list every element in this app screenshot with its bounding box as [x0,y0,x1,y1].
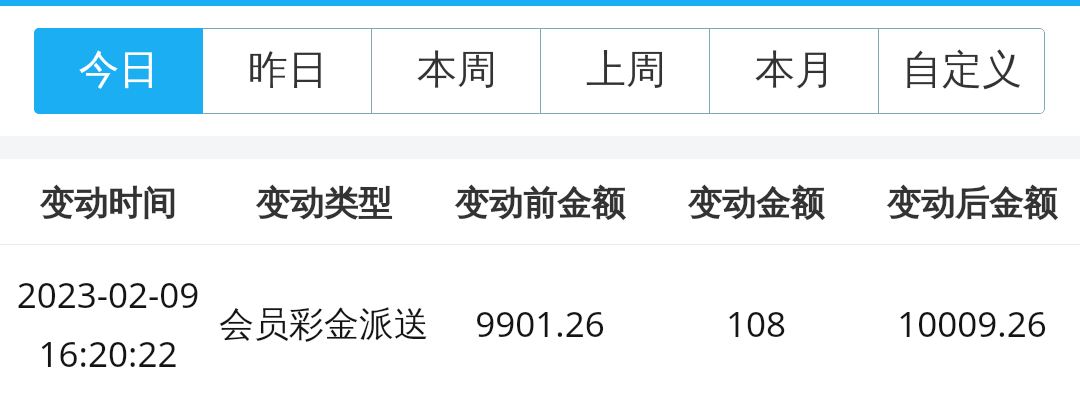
staticText: 2023-02-09 16:20:22 [0,271,216,378]
staticText: 今日 [79,44,159,94]
staticText: 108 [648,300,864,348]
staticText: 会员彩金派送 [216,302,432,346]
staticText: 9901.26 [432,300,648,348]
staticText: 变动时间 [40,182,176,225]
staticText: 今日 [79,44,159,94]
staticText: 上周 [586,44,666,94]
staticText: 本月 [755,44,835,94]
staticText: 变动金额 [688,182,824,225]
button[interactable]: 自定义 [879,28,1045,114]
staticText: 昨日 [248,44,328,94]
button[interactable]: 本月 [710,28,879,114]
button[interactable]: 2023-02-09 16:20:22 [0,245,1080,399]
button[interactable]: 本周 [372,28,541,114]
staticText: 变动后金额 [887,182,1057,225]
staticText: 自定义 [902,44,1022,94]
staticText: 10009.26 [864,300,1080,348]
button[interactable]: 昨日 [203,28,372,114]
staticText: 变动前金额 [455,182,625,225]
button[interactable]: 今日 [34,28,203,114]
staticText: 变动类型 [256,182,392,225]
button[interactable]: 今日 [34,28,203,114]
button[interactable]: 上周 [541,28,710,114]
staticText: 本周 [417,44,497,94]
